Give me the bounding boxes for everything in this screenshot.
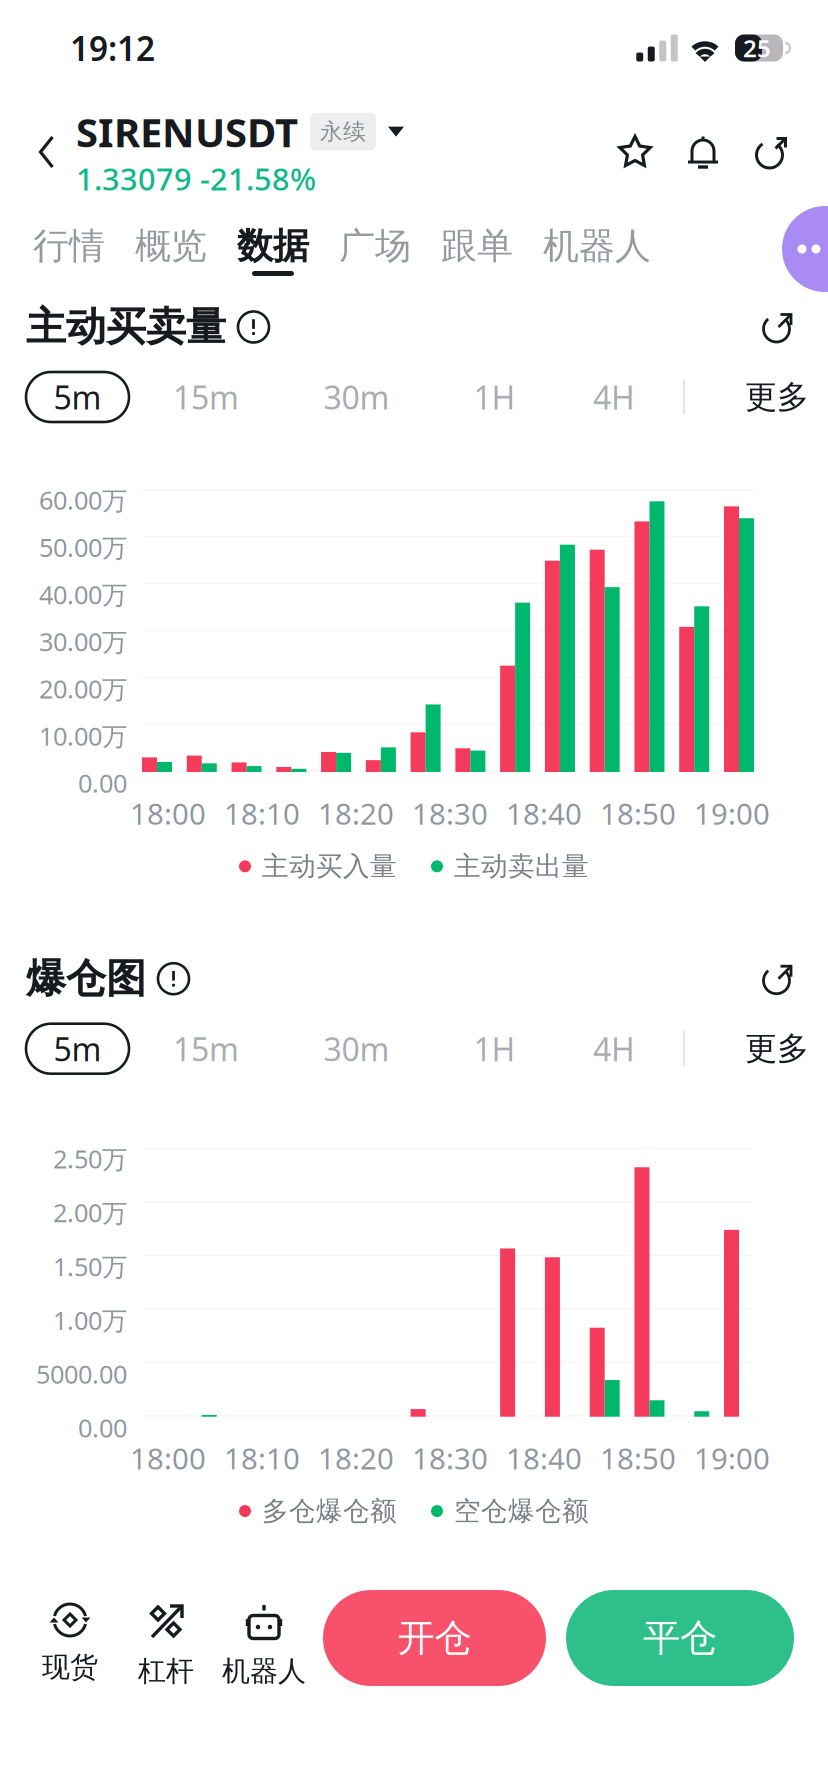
staticText: 1.50万 (53, 1249, 127, 1283)
staticText: 30m (323, 376, 389, 418)
staticText: 永续 (320, 118, 366, 145)
staticText: 19:00 (694, 794, 770, 833)
staticText: 跟单 (441, 224, 513, 268)
button[interactable]: Expand chart (754, 303, 802, 351)
button[interactable]: 概览 (120, 222, 222, 280)
staticText: 更多 (745, 1029, 809, 1068)
button[interactable]: 4H (559, 1022, 669, 1076)
staticText: 30.00万 (39, 625, 127, 658)
button[interactable]: 30m (283, 370, 430, 424)
button[interactable]: Expand chart (754, 955, 802, 1003)
button[interactable]: 平仓 (566, 1590, 794, 1686)
staticText: 5000.00 (36, 1357, 127, 1391)
button[interactable]: Back (18, 110, 76, 194)
staticText: 15m (173, 376, 239, 418)
staticText: 2.50万 (53, 1142, 127, 1175)
button[interactable]: 机器人 (528, 222, 666, 280)
staticText: 30m (323, 1027, 389, 1070)
staticText: 数据 (237, 224, 309, 268)
staticText: 18:50 (600, 794, 676, 833)
staticText: 主动卖出量 (454, 850, 589, 883)
button[interactable]: Share (744, 114, 798, 190)
button[interactable]: 15m (129, 370, 283, 424)
staticText: 爆仓图 (26, 954, 146, 1003)
button[interactable]: 5m (26, 1024, 129, 1074)
staticText: 20.00万 (39, 672, 127, 705)
staticText: 18:00 (130, 1439, 206, 1478)
button[interactable]: 30m (283, 1022, 430, 1076)
button[interactable]: 1H (430, 1022, 559, 1076)
staticText: 概览 (135, 224, 207, 268)
staticText: 杠杆 (138, 1654, 194, 1688)
button[interactable]: 5m (26, 372, 129, 422)
button[interactable]: 更多 (745, 370, 809, 424)
staticText: 19:12 (70, 26, 155, 70)
staticText: 25 (743, 32, 771, 64)
button[interactable]: 数据 (222, 222, 324, 280)
staticText: 机器人 (543, 224, 651, 268)
staticText: 18:50 (600, 1439, 676, 1478)
staticText: 19:00 (694, 1439, 770, 1478)
staticText: 5m (53, 1027, 101, 1070)
staticText: 1.33079 -21.58% (76, 158, 316, 199)
staticText: 开仓 (397, 1615, 471, 1661)
staticText: 1H (473, 1027, 515, 1070)
button[interactable]: 更多 (745, 1022, 809, 1076)
staticText: 多仓爆仓额 (262, 1495, 397, 1527)
staticText: 18:10 (224, 1439, 300, 1478)
staticText: 40.00万 (39, 577, 127, 611)
staticText: 18:20 (318, 794, 394, 833)
button[interactable]: 广场 (324, 222, 426, 280)
button[interactable]: 开仓 (323, 1590, 546, 1686)
staticText: 10.00万 (39, 719, 127, 753)
button[interactable]: 15m (129, 1022, 283, 1076)
staticText: 18:40 (506, 794, 582, 833)
button[interactable]: 1H (430, 370, 559, 424)
button[interactable]: 机器人 (214, 1590, 314, 1686)
staticText: 18:10 (224, 794, 300, 833)
staticText: 18:00 (130, 794, 206, 833)
staticText: 行情 (33, 224, 105, 268)
staticText: 平仓 (643, 1615, 717, 1661)
staticText: 空仓爆仓额 (454, 1495, 589, 1527)
staticText: 18:30 (412, 1439, 488, 1478)
staticText: 4H (593, 376, 635, 418)
staticText: 18:40 (506, 1439, 582, 1478)
staticText: 50.00万 (39, 530, 127, 564)
button[interactable]: 现货 (22, 1590, 118, 1686)
staticText: 0.00 (78, 766, 127, 800)
staticText: 18:30 (412, 794, 488, 833)
staticText: 15m (173, 1027, 239, 1070)
staticText: 主动买卖量 (26, 302, 226, 351)
staticText: SIRENUSDT (76, 105, 298, 158)
staticText: 1.00万 (53, 1303, 127, 1337)
staticText: 60.00万 (39, 483, 127, 517)
staticText: 现货 (42, 1650, 98, 1684)
button[interactable]: Favorite (608, 114, 662, 190)
staticText: 机器人 (222, 1654, 306, 1688)
staticText: 18:20 (318, 1439, 394, 1478)
staticText: 广场 (339, 224, 411, 268)
staticText: 更多 (745, 377, 809, 417)
button[interactable]: 行情 (18, 222, 120, 280)
staticText: 2.00万 (53, 1196, 127, 1229)
button[interactable]: 杠杆 (118, 1590, 214, 1686)
staticText: 5m (53, 376, 101, 418)
button[interactable]: Alerts (676, 114, 730, 190)
staticText: 1H (473, 376, 515, 418)
staticText: 4H (593, 1027, 635, 1070)
staticText: 0.00 (78, 1411, 127, 1444)
staticText: 主动买入量 (262, 850, 397, 883)
button[interactable]: 4H (559, 370, 669, 424)
button[interactable]: 跟单 (426, 222, 528, 280)
